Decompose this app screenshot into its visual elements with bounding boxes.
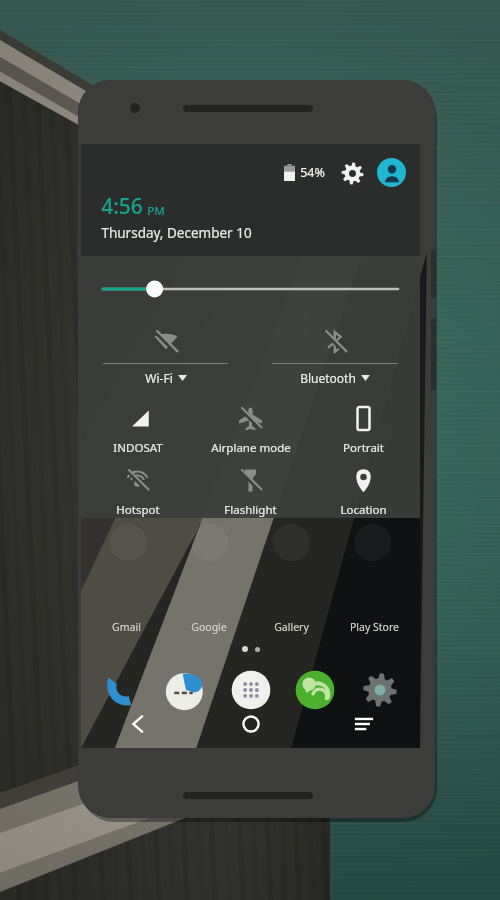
button[interactable]: Bluetooth [250,320,420,390]
button[interactable]: Google [167,620,250,634]
button[interactable]: Flashlight [194,468,307,518]
button[interactable]: Phone [98,666,146,714]
button[interactable]: Camera [291,666,339,714]
staticText: INDOSAT [113,440,163,456]
staticText: Hotspot [116,502,160,518]
button[interactable]: Play Store [333,620,416,634]
button[interactable]: INDOSAT [81,398,194,464]
staticText: Thursday, December 10 [101,224,252,242]
button[interactable]: Gallery [250,620,333,634]
button[interactable]: Home [194,700,307,748]
button[interactable]: Messages [162,666,210,714]
button[interactable]: Hotspot [81,468,194,518]
button[interactable]: Wi-Fi [81,320,250,390]
button[interactable]: Settings [339,160,365,186]
staticText: 54% [300,164,325,181]
button[interactable]: All apps [227,666,275,714]
staticText: Play Store [350,620,399,634]
staticText: PM [147,203,165,219]
button[interactable]: Recent apps [307,700,420,748]
staticText: Bluetooth [300,370,356,386]
staticText: Wi-Fi [145,370,173,386]
button[interactable]: Location [307,468,420,518]
staticText: Flashlight [224,502,277,518]
button[interactable]: Settings [356,666,404,714]
staticText: Location [340,502,387,518]
button[interactable]: User profile [377,158,406,187]
button[interactable]: Portrait [307,398,420,464]
staticText: Google [191,620,227,634]
staticText: Portrait [343,440,384,456]
staticText: Gallery [274,620,309,634]
staticText: Airplane mode [211,440,291,456]
button[interactable]: Gmail [85,620,167,634]
staticText: Gmail [112,620,141,634]
button[interactable]: Back [81,700,194,748]
staticText: 4:56 [101,192,143,221]
button[interactable]: Brightness [103,276,398,302]
button[interactable]: Airplane mode [194,398,307,464]
